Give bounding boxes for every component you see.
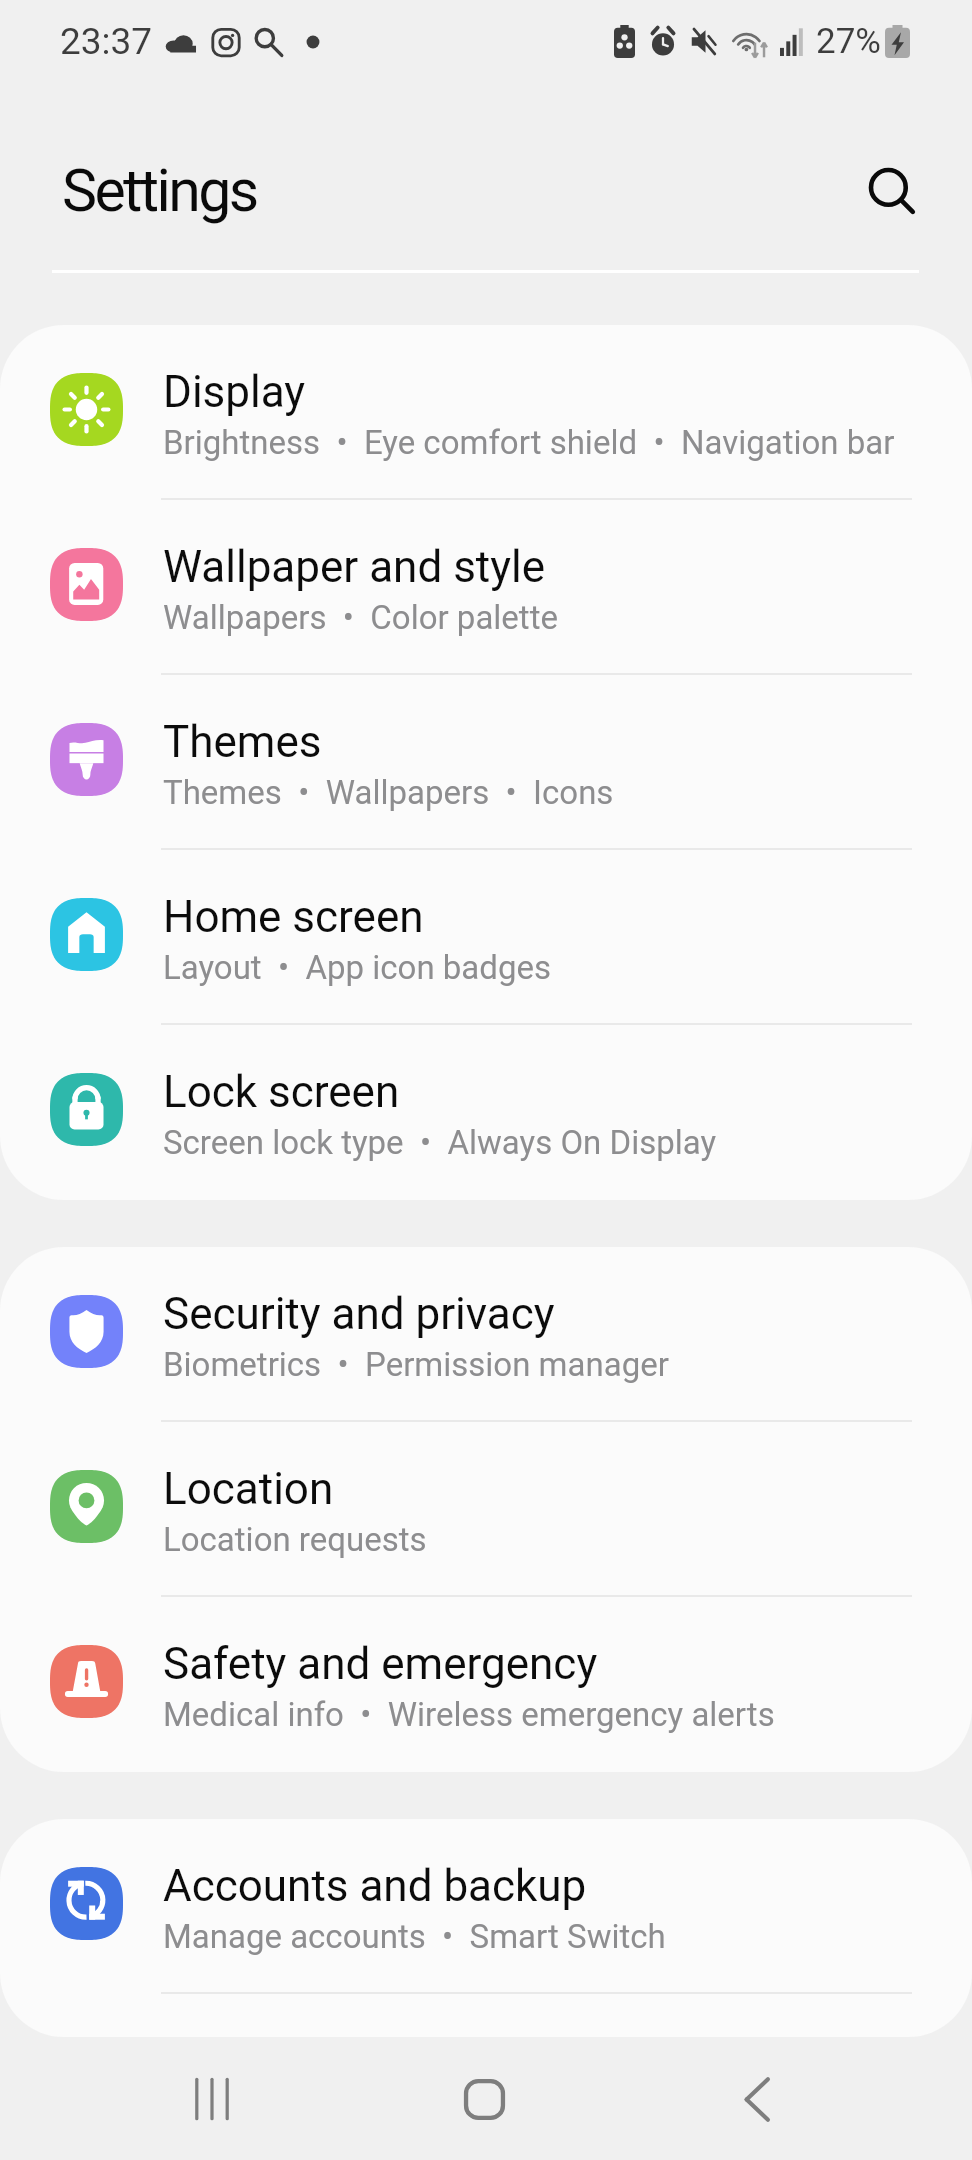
- staticText: Settings: [62, 156, 257, 225]
- staticText: Manage accounts • Smart Switch: [163, 1917, 666, 1956]
- button[interactable]: Recent apps: [140, 2038, 284, 2160]
- staticText: 23:37: [60, 20, 153, 63]
- staticText: 27%: [816, 21, 881, 62]
- staticText: Wallpapers • Color palette: [163, 598, 558, 637]
- staticText: Location requests: [163, 1520, 427, 1559]
- button[interactable]: Home screen: [0, 850, 972, 1025]
- staticText: Display: [163, 366, 306, 418]
- button[interactable]: Safety and emergency: [0, 1597, 972, 1772]
- staticText: Medical info • Wireless emergency alerts: [163, 1695, 775, 1734]
- staticText: Brightness • Eye comfort shield • Naviga…: [163, 423, 895, 462]
- button[interactable]: Security and privacy: [0, 1247, 972, 1422]
- staticText: Location: [163, 1463, 334, 1515]
- staticText: Biometrics • Permission manager: [163, 1345, 669, 1384]
- button[interactable]: Search: [846, 145, 940, 239]
- staticText: Screen lock type • Always On Display: [163, 1123, 717, 1162]
- staticText: Safety and emergency: [163, 1638, 598, 1690]
- staticText: Accounts and backup: [163, 1860, 587, 1912]
- button[interactable]: Home: [412, 2038, 556, 2160]
- button[interactable]: Location: [0, 1422, 972, 1597]
- button[interactable]: Lock screen: [0, 1025, 972, 1200]
- staticText: Security and privacy: [163, 1288, 555, 1340]
- staticText: Themes • Wallpapers • Icons: [163, 773, 614, 812]
- button[interactable]: Themes: [0, 675, 972, 850]
- button[interactable]: Wallpaper and style: [0, 500, 972, 675]
- staticText: Wallpaper and style: [163, 541, 546, 593]
- button[interactable]: Back: [685, 2038, 829, 2160]
- staticText: Themes: [163, 716, 322, 768]
- staticText: Home screen: [163, 891, 424, 943]
- button[interactable]: Display: [0, 325, 972, 500]
- staticText: Layout • App icon badges: [163, 948, 551, 987]
- button[interactable]: Accounts and backup: [0, 1819, 972, 1994]
- staticText: Lock screen: [163, 1066, 400, 1118]
